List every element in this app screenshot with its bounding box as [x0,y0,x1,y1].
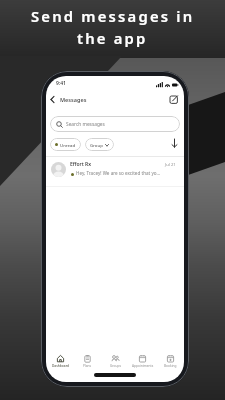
button[interactable] [168,93,181,106]
button[interactable]: Groups [102,354,129,368]
button[interactable]: Dashboard [47,354,74,368]
staticText: Group [90,142,103,148]
button[interactable]: Group [85,138,114,151]
button[interactable]: Effort Rx [46,157,184,186]
staticText: Send messages in [31,6,195,26]
staticText: Jul 21 [165,162,176,168]
staticText: Booking [164,364,177,368]
button[interactable]: Unread [50,138,81,151]
button[interactable]: Appointments [129,354,156,368]
button[interactable]: Plans [74,354,101,368]
staticText: Dashboard [52,364,69,368]
staticText: Messages [60,96,87,103]
button[interactable]: Booking [157,354,184,368]
staticText: Effort Rx [70,161,92,168]
staticText: Search messages [66,121,105,128]
staticText: 9:41 [56,80,66,87]
staticText: Unread [60,142,76,148]
staticText: Appointments [132,364,154,368]
button[interactable] [47,93,59,106]
staticText: Hey, Tracey! We are so excited that yo..… [76,170,161,176]
staticText: Groups [110,364,121,368]
button[interactable]: Search messages [50,116,180,132]
staticText: Plans [83,364,92,368]
button[interactable] [169,136,180,151]
staticText: the app [77,28,148,48]
